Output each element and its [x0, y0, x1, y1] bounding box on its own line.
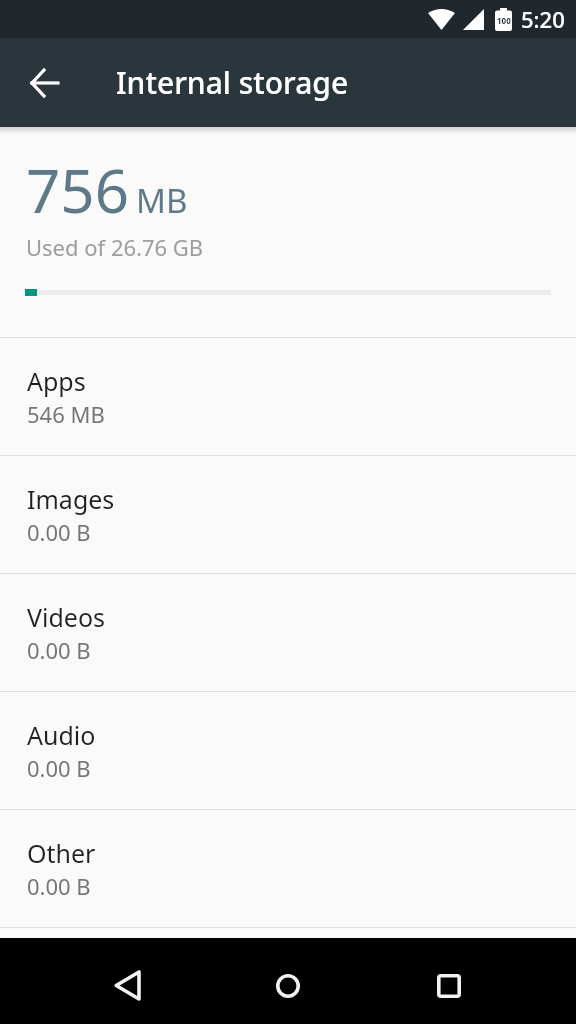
- staticText: Other: [27, 836, 96, 870]
- staticText: 0.00 B: [27, 517, 91, 547]
- button[interactable]: [260, 958, 315, 1013]
- button[interactable]: [20, 58, 70, 108]
- staticText: Audio: [27, 718, 96, 752]
- staticText: 546 MB: [27, 399, 105, 429]
- staticText: Used of 26.76 GB: [26, 232, 204, 262]
- staticText: 0.00 B: [27, 635, 91, 665]
- button[interactable]: Videos: [0, 574, 576, 691]
- button[interactable]: Audio: [0, 692, 576, 809]
- button[interactable]: Other: [0, 810, 576, 927]
- button[interactable]: [421, 958, 476, 1013]
- staticText: MB: [136, 178, 188, 223]
- staticText: Videos: [27, 600, 106, 634]
- staticText: Images: [27, 482, 115, 516]
- button[interactable]: Images: [0, 456, 576, 573]
- button[interactable]: [100, 958, 155, 1013]
- staticText: 756: [26, 149, 129, 231]
- staticText: Apps: [27, 364, 86, 398]
- staticText: 100: [497, 15, 511, 26]
- staticText: Internal storage: [116, 62, 349, 103]
- staticText: 0.00 B: [27, 871, 91, 901]
- button[interactable]: Apps: [0, 338, 576, 455]
- staticText: 0.00 B: [27, 753, 91, 783]
- staticText: 5:20: [521, 4, 565, 34]
